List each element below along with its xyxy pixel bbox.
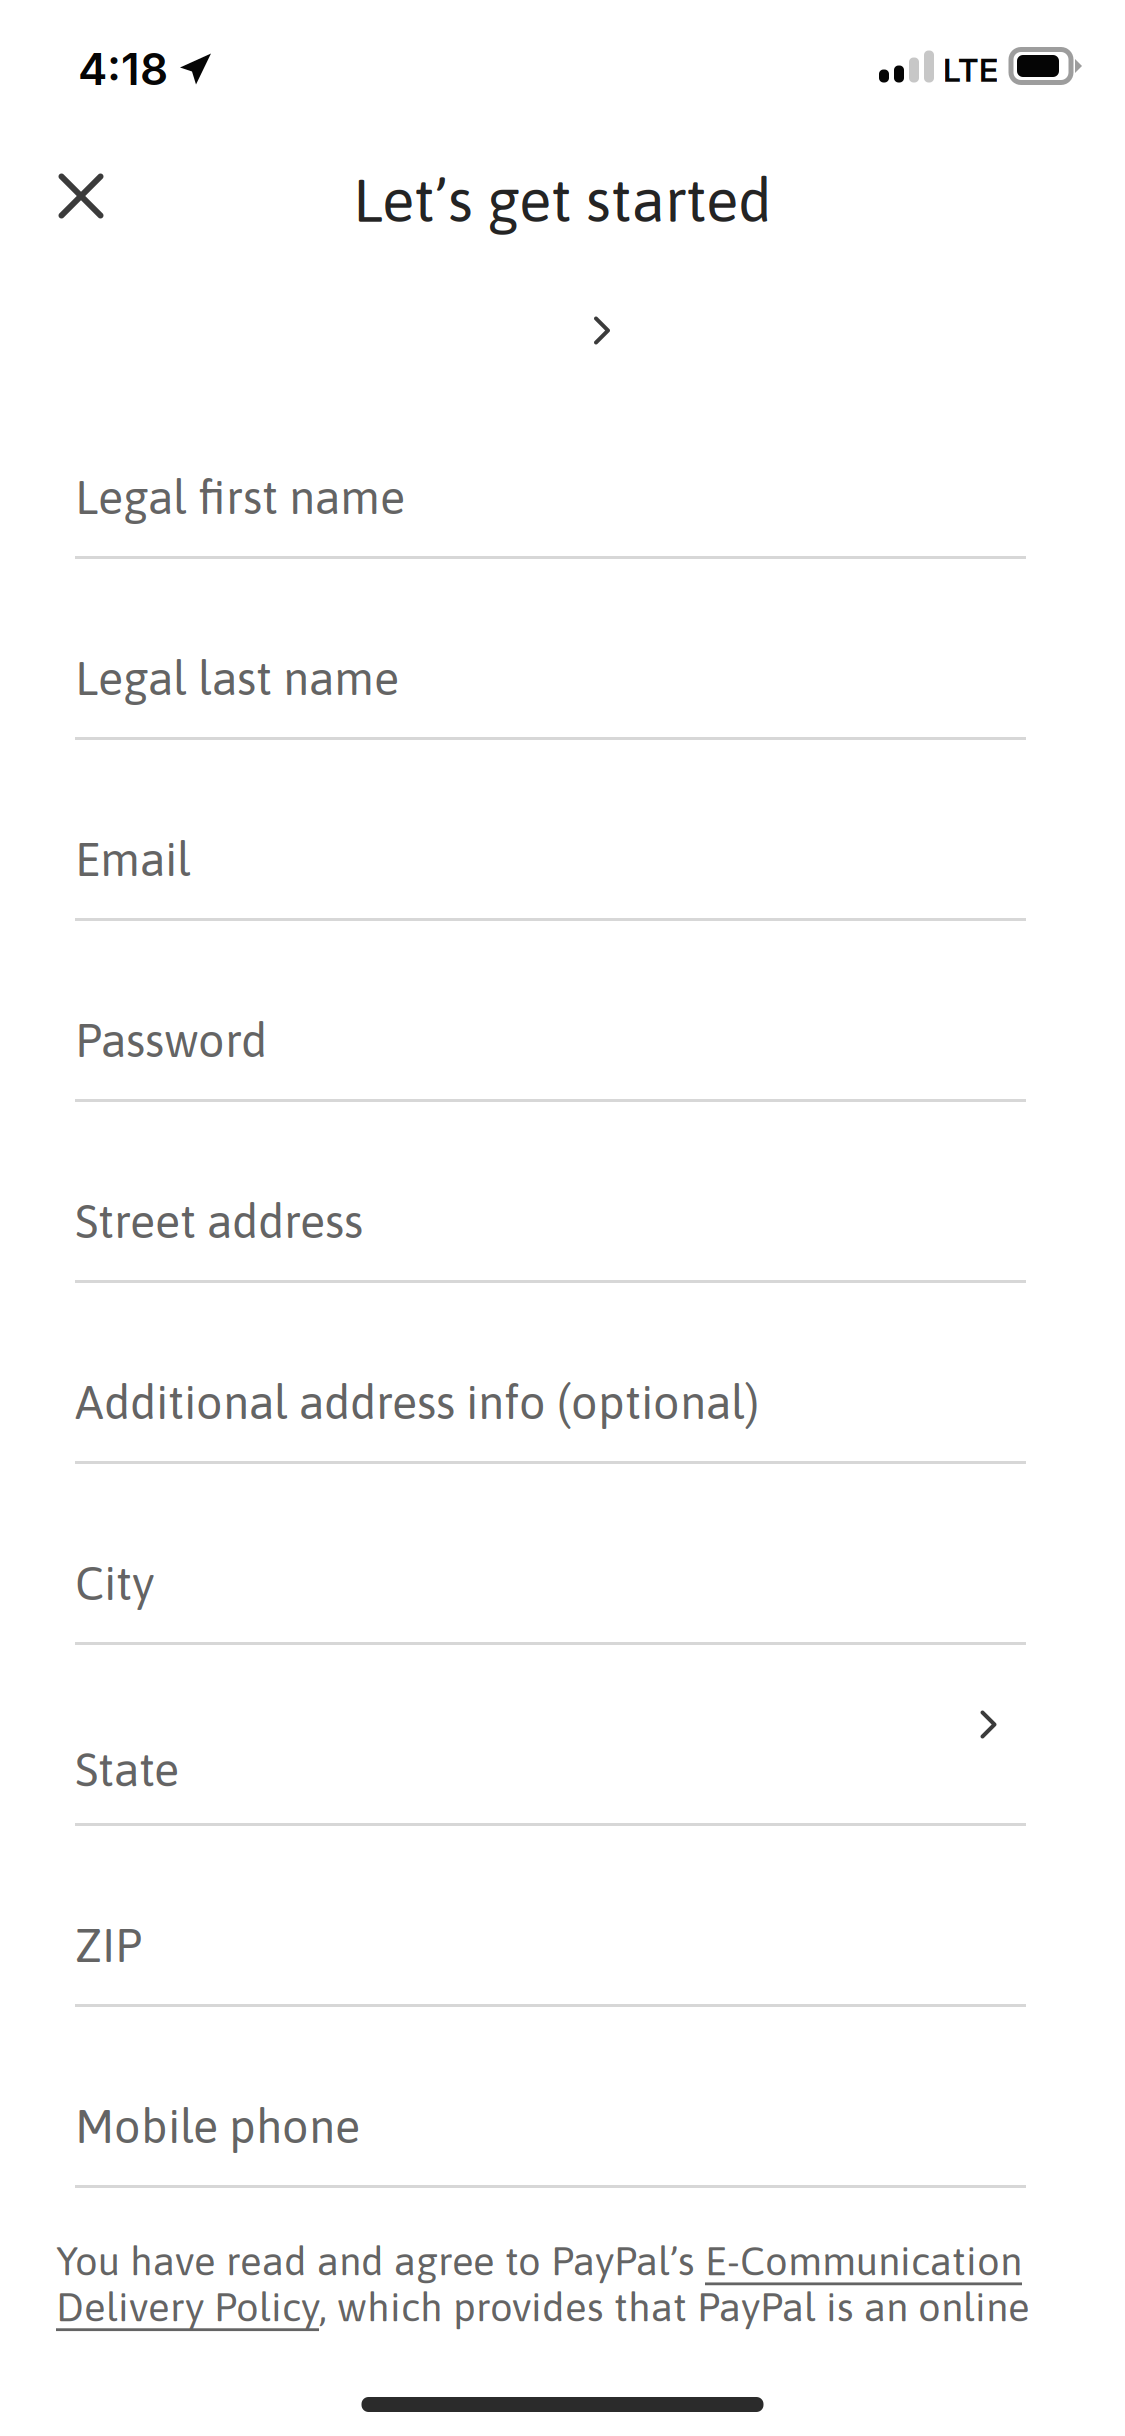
staticText: Additional address info (optional) [75,1375,759,1429]
button[interactable]: ZIP [75,1826,1026,2007]
button[interactable]: City [75,1464,1026,1645]
staticText: LTE [943,51,998,89]
button[interactable]: Mobile phone [75,2007,1026,2188]
button[interactable]: State [75,1645,1026,1826]
staticText: 4:18 [78,42,168,96]
staticText: Mobile phone [75,2099,360,2153]
staticText: Street address [75,1194,363,1248]
staticText: Legal first name [75,470,405,524]
staticText: State [75,1743,179,1796]
button[interactable]: Choose country [542,256,662,387]
button[interactable]: Password [75,921,1026,1102]
staticText: Legal last name [75,651,399,705]
staticText: Email [75,832,191,886]
staticText: You have read and agree to PayPal’s E-Co… [56,2238,1030,2330]
button[interactable]: Additional address info (optional) [75,1283,1026,1464]
staticText: City [75,1556,154,1610]
staticText: Password [75,1013,267,1067]
button[interactable]: Legal first name [75,378,1026,559]
staticText: ZIP [75,1918,142,1972]
button[interactable]: Legal last name [75,559,1026,740]
button[interactable]: Email [75,740,1026,921]
button[interactable]: Close [21,131,141,269]
staticText: Let’s get started [353,166,772,234]
button[interactable]: Street address [75,1102,1026,1283]
